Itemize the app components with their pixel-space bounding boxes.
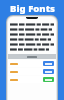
staticText: Big Fonts: [10, 2, 55, 15]
button[interactable]: Option two: [8, 68, 56, 75]
button[interactable]: Option one: [8, 60, 56, 67]
button[interactable]: Option one: [43, 61, 54, 66]
button[interactable]: Option three: [8, 76, 56, 83]
button[interactable]: Option two: [43, 69, 54, 74]
button[interactable]: Option three: [43, 77, 54, 82]
